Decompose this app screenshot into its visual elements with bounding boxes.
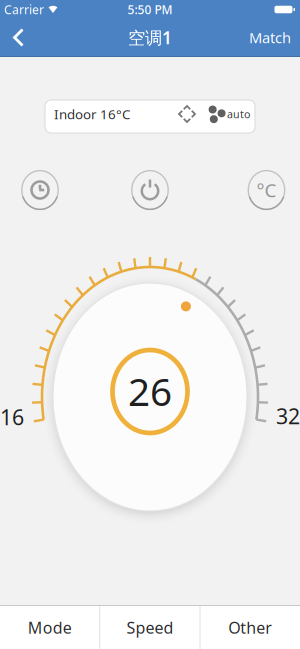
staticText: 5:50 PM [127, 1, 172, 17]
button[interactable]: Power [129, 169, 171, 211]
staticText: °C [256, 178, 276, 202]
button[interactable]: Other [201, 606, 300, 649]
staticText: 32 [276, 402, 300, 430]
button[interactable]: Mode [0, 606, 99, 649]
staticText: 16 [0, 403, 24, 431]
staticText: Indoor 16°C [54, 105, 130, 123]
button[interactable]: Back [5, 22, 35, 52]
staticText: Other [228, 617, 272, 638]
button[interactable]: Temperature unit [245, 169, 287, 211]
button[interactable]: Timer [19, 169, 61, 211]
button[interactable]: Speed [100, 606, 200, 649]
staticText: Match [249, 28, 291, 47]
button[interactable]: Match [249, 28, 300, 47]
staticText: 空调1 [128, 26, 172, 49]
staticText: 26 [128, 365, 172, 417]
staticText: Speed [126, 617, 173, 638]
staticText: Carrier [4, 1, 44, 17]
staticText: Mode [28, 617, 72, 638]
staticText: auto [227, 107, 250, 121]
